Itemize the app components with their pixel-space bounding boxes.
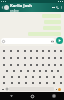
button[interactable]: [40, 47, 46, 54]
button[interactable]: [21, 54, 28, 61]
button[interactable]: [52, 61, 58, 68]
button[interactable]: Send voice message: [56, 37, 63, 44]
button[interactable]: [37, 68, 43, 74]
button[interactable]: [43, 80, 50, 86]
button[interactable]: [0, 80, 8, 86]
button[interactable]: [15, 80, 22, 86]
button[interactable]: [29, 74, 36, 80]
button[interactable]: [0, 74, 8, 80]
button[interactable]: [49, 68, 55, 74]
button[interactable]: [46, 61, 52, 68]
button[interactable]: [10, 68, 17, 74]
button[interactable]: [28, 61, 34, 68]
button[interactable]: [40, 54, 46, 61]
button[interactable]: [7, 61, 14, 68]
button[interactable]: [8, 80, 15, 86]
button[interactable]: [36, 74, 43, 80]
button[interactable]: Home: [22, 92, 43, 100]
button[interactable]: [43, 68, 49, 74]
button[interactable]: Call: [55, 3, 59, 12]
button[interactable]: [21, 47, 28, 54]
button[interactable]: [1, 38, 55, 44]
button[interactable]: [34, 61, 40, 68]
button[interactable]: [28, 54, 34, 61]
button[interactable]: [57, 74, 64, 80]
button[interactable]: Emoji: [5, 87, 9, 91]
button[interactable]: Symbols: [1, 87, 5, 91]
button[interactable]: [52, 54, 58, 61]
button[interactable]: [8, 74, 15, 80]
button[interactable]: [58, 61, 64, 68]
button[interactable]: [34, 54, 40, 61]
button[interactable]: [40, 61, 46, 68]
button[interactable]: [22, 80, 29, 86]
button[interactable]: [21, 61, 28, 68]
button[interactable]: Back: [0, 3, 4, 12]
button[interactable]: [58, 47, 64, 54]
button[interactable]: [0, 61, 7, 68]
button[interactable]: Contact photo: [4, 5, 9, 10]
button[interactable]: [28, 47, 34, 54]
button[interactable]: [15, 74, 22, 80]
button[interactable]: [55, 68, 61, 74]
button[interactable]: [46, 47, 52, 54]
button[interactable]: [7, 54, 14, 61]
button[interactable]: [22, 74, 29, 80]
button[interactable]: [52, 47, 58, 54]
button[interactable]: [50, 74, 57, 80]
button[interactable]: Hide keyboard: [0, 92, 22, 100]
button[interactable]: Enter: [58, 88, 61, 91]
button[interactable]: [24, 68, 31, 74]
button[interactable]: More options: [59, 3, 63, 12]
button[interactable]: Period: [54, 87, 58, 91]
button[interactable]: [43, 74, 50, 80]
button[interactable]: [17, 68, 24, 74]
staticText: online: [10, 9, 19, 12]
button[interactable]: [29, 80, 36, 86]
button[interactable]: Recent apps: [43, 92, 64, 100]
button[interactable]: [14, 47, 21, 54]
button[interactable]: [57, 80, 64, 86]
button[interactable]: [50, 80, 57, 86]
button[interactable]: Video call: [51, 3, 55, 12]
button[interactable]: [36, 80, 43, 86]
button[interactable]: [34, 47, 40, 54]
button[interactable]: [3, 68, 10, 74]
staticText: Karlia Josh: [10, 3, 33, 9]
button[interactable]: [14, 54, 21, 61]
button[interactable]: [58, 54, 64, 61]
button[interactable]: [0, 54, 7, 61]
button[interactable]: [7, 47, 14, 54]
button[interactable]: [14, 61, 21, 68]
button[interactable]: [31, 68, 37, 74]
button[interactable]: [0, 47, 7, 54]
button[interactable]: [46, 54, 52, 61]
